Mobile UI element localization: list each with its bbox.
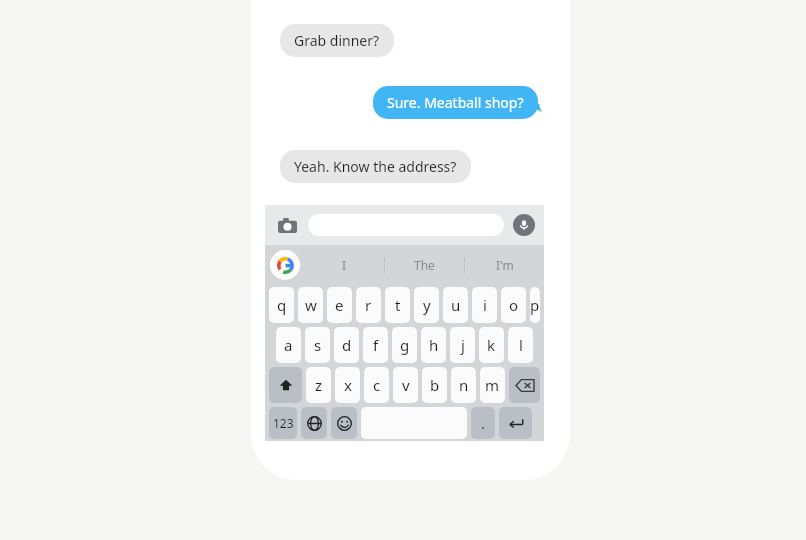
staticText: n (459, 375, 469, 395)
staticText: x (344, 375, 352, 395)
staticText: k (487, 335, 496, 355)
button[interactable]: Shift (269, 367, 302, 403)
button[interactable]: s (305, 327, 330, 363)
staticText: z (315, 375, 323, 395)
staticText: w (305, 295, 317, 315)
staticText: h (429, 335, 439, 355)
button[interactable]: g (392, 327, 417, 363)
button[interactable]: x (335, 367, 360, 403)
staticText: e (335, 295, 344, 315)
button[interactable]: . (471, 407, 495, 439)
button[interactable]: I'm (465, 245, 544, 285)
button[interactable]: Enter (499, 407, 532, 439)
button[interactable]: v (393, 367, 418, 403)
button[interactable]: d (334, 327, 359, 363)
button[interactable]: b (422, 367, 447, 403)
button[interactable]: y (414, 287, 439, 323)
staticText: y (423, 295, 431, 315)
button[interactable]: Voice input (513, 214, 535, 236)
button[interactable]: The (385, 245, 464, 285)
button[interactable]: q (269, 287, 294, 323)
staticText: b (430, 375, 440, 395)
button[interactable]: j (450, 327, 475, 363)
staticText: f (373, 335, 379, 355)
button[interactable]: I (305, 245, 384, 285)
button[interactable]: a (276, 327, 301, 363)
staticText: Sure. Meatball shop? (387, 93, 524, 112)
button[interactable]: r (356, 287, 381, 323)
button[interactable]: c (364, 367, 389, 403)
staticText: I'm (496, 257, 514, 273)
staticText: p (530, 295, 540, 315)
button[interactable]: w (298, 287, 323, 323)
button[interactable]: z (306, 367, 331, 403)
button[interactable]: k (479, 327, 504, 363)
staticText: . (481, 414, 485, 433)
staticText: Yeah. Know the address? (294, 157, 457, 176)
button[interactable]: u (443, 287, 468, 323)
staticText: i (483, 295, 487, 315)
staticText: I (342, 257, 347, 273)
staticText: q (277, 295, 287, 315)
staticText: r (365, 295, 372, 315)
staticText: o (509, 295, 519, 315)
button[interactable]: Backspace (509, 367, 540, 403)
button[interactable] (308, 214, 504, 236)
button[interactable]: n (451, 367, 476, 403)
staticText: s (314, 335, 322, 355)
button[interactable]: m (480, 367, 505, 403)
staticText: g (400, 335, 410, 355)
staticText: m (485, 375, 500, 395)
staticText: Grab dinner? (294, 31, 380, 50)
staticText: j (461, 335, 465, 355)
button[interactable]: t (385, 287, 410, 323)
button[interactable]: Change language (301, 407, 327, 439)
staticText: u (451, 295, 461, 315)
button[interactable]: Grab dinner? (280, 24, 394, 57)
staticText: a (284, 335, 293, 355)
button[interactable]: p (530, 287, 540, 323)
button[interactable]: o (501, 287, 526, 323)
button[interactable]: Emoji (331, 407, 357, 439)
staticText: c (373, 375, 381, 395)
button[interactable]: f (363, 327, 388, 363)
button[interactable]: Camera (274, 212, 300, 238)
button[interactable]: l (508, 327, 533, 363)
button[interactable]: Yeah. Know the address? (280, 150, 471, 183)
staticText: t (395, 295, 401, 315)
button[interactable]: Sure. Meatball shop? (373, 86, 538, 119)
staticText: l (519, 335, 523, 355)
staticText: The (414, 257, 435, 273)
staticText: 123 (273, 415, 294, 431)
staticText: d (342, 335, 352, 355)
button[interactable]: Google (270, 250, 300, 280)
staticText: v (402, 375, 410, 395)
button[interactable]: i (472, 287, 497, 323)
button[interactable]: 123 (269, 407, 297, 439)
button[interactable]: h (421, 327, 446, 363)
button[interactable]: e (327, 287, 352, 323)
